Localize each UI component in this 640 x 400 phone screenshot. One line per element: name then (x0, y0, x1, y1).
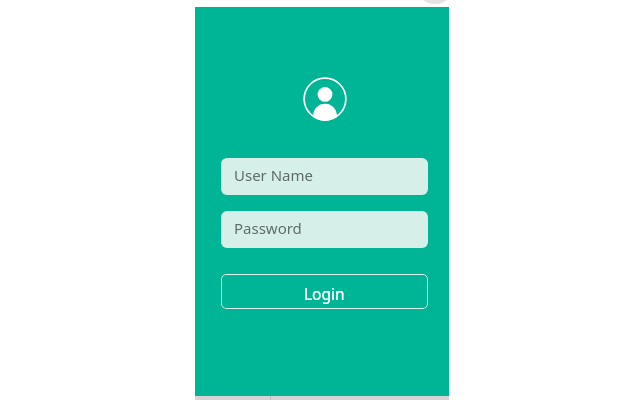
staticText: User Name (234, 165, 314, 185)
button[interactable]: Profile avatar (301, 75, 349, 123)
staticText: Password (234, 218, 302, 238)
button[interactable]: Password (221, 211, 428, 248)
button[interactable]: User Name (221, 158, 428, 195)
staticText: Login (304, 283, 345, 304)
button[interactable]: Login (221, 274, 428, 309)
